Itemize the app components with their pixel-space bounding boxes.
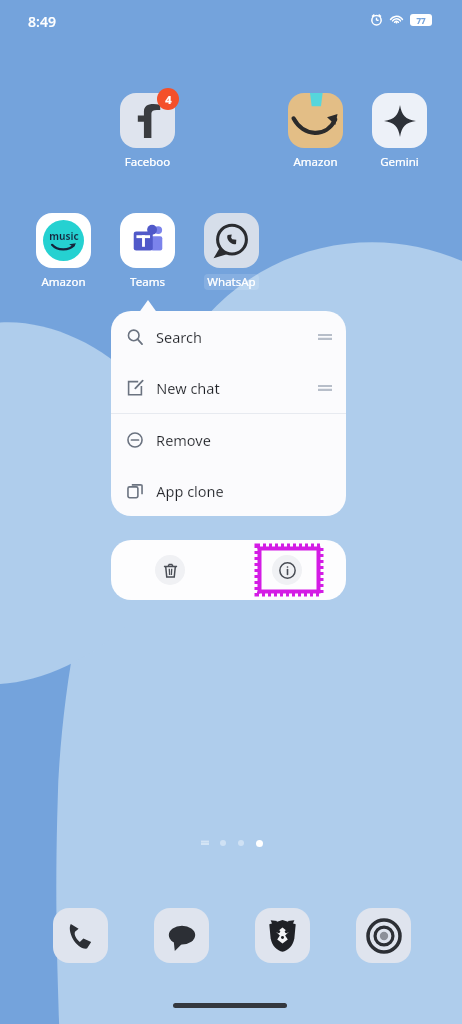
button[interactable]: Brave Browser (255, 908, 310, 963)
button[interactable]: App clone (111, 465, 346, 516)
staticText: Amazon (290, 154, 341, 170)
staticText: WhatsApp (206, 274, 257, 290)
staticText: Facebook (122, 154, 173, 170)
button[interactable]: Phone (53, 908, 108, 963)
button[interactable]: WhatsApp (204, 213, 259, 290)
staticText: 4 (165, 92, 172, 107)
staticText: music (49, 229, 79, 243)
button[interactable]: Remove (111, 414, 346, 465)
button[interactable]: music (36, 213, 91, 290)
staticText: Teams (122, 274, 173, 290)
button[interactable]: Camera (356, 908, 411, 963)
staticText: Gemini (374, 154, 425, 170)
button[interactable]: Search (111, 311, 346, 362)
staticText: Remove (156, 430, 211, 450)
button[interactable]: App info (272, 555, 302, 585)
staticText: App clone (156, 481, 224, 501)
staticText: Search (156, 327, 202, 347)
staticText: 8:49 (28, 12, 56, 31)
button[interactable]: Facebook (120, 93, 175, 170)
staticText: 77 (416, 15, 426, 26)
button[interactable]: Teams (120, 213, 175, 290)
staticText: New chat (156, 378, 220, 398)
button[interactable]: Gemini (372, 93, 427, 170)
button[interactable]: Uninstall (155, 555, 185, 585)
button[interactable]: Amazon (288, 93, 343, 170)
button[interactable]: New chat (111, 362, 346, 413)
staticText: Amazon Music (38, 274, 89, 290)
button[interactable]: Messages (154, 908, 209, 963)
